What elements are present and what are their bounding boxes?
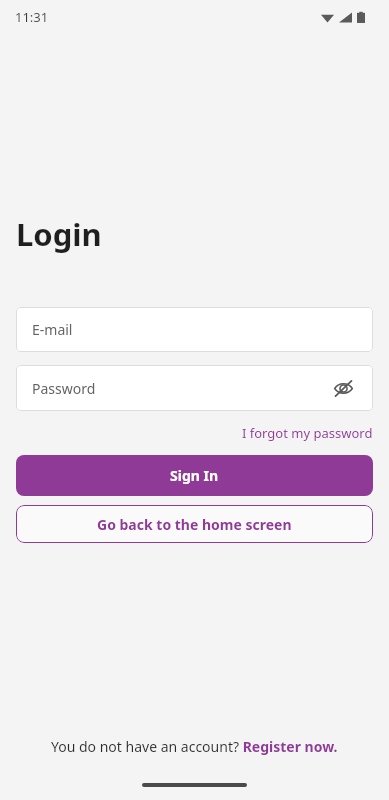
staticText: E-mail <box>32 320 73 339</box>
staticText: Password <box>32 379 96 398</box>
staticText: You do not have an account? Register now… <box>51 737 338 756</box>
button[interactable]: E-mail <box>16 307 373 352</box>
staticText: Login <box>16 213 102 255</box>
staticText: Go back to the home screen <box>97 515 292 534</box>
button[interactable]: I forgot my password <box>242 424 373 442</box>
button[interactable]: Sign In <box>16 455 373 496</box>
staticText: I forgot my password <box>242 424 373 442</box>
button[interactable]: You do not have an account? Register now… <box>51 737 338 756</box>
button[interactable]: Show password <box>329 374 357 402</box>
button[interactable]: Go back to the home screen <box>16 505 373 543</box>
staticText: 11:31 <box>15 8 49 26</box>
staticText: Sign In <box>170 466 219 485</box>
button[interactable]: Password <box>16 365 373 411</box>
